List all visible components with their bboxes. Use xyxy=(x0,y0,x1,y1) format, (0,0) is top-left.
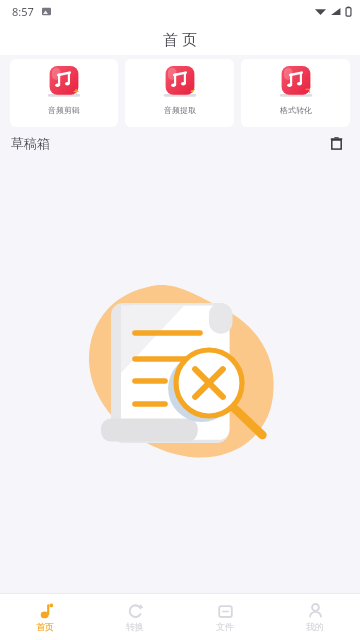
staticText: 8:57 xyxy=(12,4,34,19)
staticText: 转换 xyxy=(126,621,144,632)
button[interactable]: 格式转化 xyxy=(241,59,350,127)
button[interactable]: 音频剪辑 xyxy=(10,59,118,127)
staticText: 草稿箱 xyxy=(11,135,50,151)
button[interactable]: 文件 xyxy=(180,594,270,640)
staticText: 首 页 xyxy=(163,29,197,49)
button[interactable]: Delete drafts xyxy=(324,131,348,155)
staticText: 音频提取 xyxy=(164,105,196,115)
staticText: 格式转化 xyxy=(280,105,312,115)
staticText: 音频剪辑 xyxy=(48,105,80,115)
staticText: 首页 xyxy=(36,621,54,632)
button[interactable]: 我的 xyxy=(270,594,360,640)
button[interactable]: 转换 xyxy=(90,594,180,640)
button[interactable]: 音频提取 xyxy=(125,59,234,127)
staticText: 我的 xyxy=(306,621,324,632)
staticText: 文件 xyxy=(216,621,234,632)
button[interactable]: 首页 xyxy=(0,594,90,640)
